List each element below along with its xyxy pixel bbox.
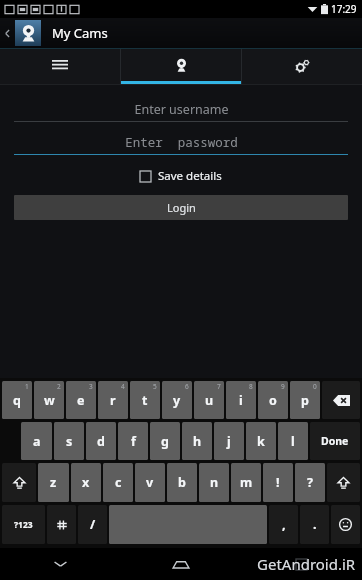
button[interactable]: Done — [310, 422, 360, 460]
button[interactable]: Enter password — [14, 130, 348, 155]
button[interactable]: Recent apps — [241, 548, 362, 580]
staticText: ! — [276, 474, 280, 491]
staticText: GetAndroid.iR — [257, 554, 356, 574]
staticText: k — [257, 433, 265, 450]
button[interactable]: Backspace — [322, 381, 360, 419]
button[interactable]: x — [71, 463, 101, 502]
staticText: 2 — [57, 382, 61, 391]
button[interactable]: r — [98, 381, 128, 419]
staticText: o — [269, 392, 277, 409]
button[interactable]: p — [290, 381, 320, 419]
staticText: q — [13, 392, 21, 409]
staticText: y — [173, 392, 181, 409]
staticText: v — [146, 474, 154, 491]
button[interactable]: / — [78, 505, 107, 544]
button[interactable]: e — [66, 381, 96, 419]
button[interactable]: Settings — [242, 49, 362, 84]
button[interactable]: l — [278, 422, 308, 460]
button[interactable]: List — [0, 49, 120, 84]
button[interactable]: f — [118, 422, 148, 460]
button[interactable]: Shift — [327, 463, 360, 502]
staticText: 9 — [281, 382, 285, 391]
button[interactable]: Home — [120, 548, 241, 580]
button[interactable]: a — [21, 422, 52, 460]
button[interactable]: . — [300, 505, 329, 544]
button[interactable]: w — [34, 381, 64, 419]
staticText: n — [210, 474, 219, 491]
button[interactable]: s — [54, 422, 84, 460]
staticText: a — [33, 433, 41, 450]
button[interactable]: t — [130, 381, 160, 419]
staticText: 1 — [25, 382, 29, 391]
button[interactable]: Cameras — [121, 49, 241, 84]
staticText: u — [205, 392, 214, 409]
button[interactable]: v — [135, 463, 165, 502]
button[interactable]: ! — [263, 463, 293, 502]
staticText: 4 — [121, 382, 125, 391]
staticText: r — [110, 392, 116, 409]
button[interactable]: Shift — [2, 463, 36, 502]
staticText: My Cams — [52, 24, 108, 42]
button[interactable]: g — [150, 422, 180, 460]
button[interactable]: j — [214, 422, 244, 460]
button[interactable]: Back — [0, 18, 362, 48]
staticText: g — [161, 433, 169, 450]
staticText: t — [142, 392, 148, 409]
staticText: p — [301, 392, 309, 409]
button[interactable]: Save details — [140, 168, 222, 184]
staticText: 6 — [185, 382, 189, 391]
button[interactable]: ?123 — [2, 505, 45, 544]
button[interactable]: Back — [0, 548, 120, 580]
button[interactable]: y — [162, 381, 192, 419]
staticText: i — [239, 392, 243, 409]
button[interactable]: Login — [14, 195, 348, 220]
staticText: b — [178, 474, 186, 491]
staticText: x — [82, 474, 90, 491]
button[interactable]: o — [258, 381, 288, 419]
staticText: h — [193, 433, 202, 450]
staticText: z — [50, 474, 57, 491]
button[interactable]: d — [86, 422, 116, 460]
staticText: 5 — [153, 382, 157, 391]
staticText: c — [115, 474, 122, 491]
button[interactable]: Emoji — [331, 505, 360, 544]
staticText: Login — [167, 200, 196, 215]
staticText: . — [313, 516, 317, 533]
staticText: 17:29 — [331, 2, 357, 16]
staticText: 8 — [249, 382, 253, 391]
button[interactable]: z — [38, 463, 69, 502]
staticText: w — [44, 392, 55, 409]
other: Back — [3, 29, 12, 38]
staticText: e — [77, 392, 85, 409]
staticText: f — [131, 433, 136, 450]
button[interactable]: c — [103, 463, 133, 502]
staticText: m — [240, 474, 253, 491]
staticText: ? — [307, 474, 313, 491]
staticText: Enter username — [134, 101, 229, 118]
button[interactable]: ? — [295, 463, 325, 502]
button[interactable]: Enter username — [14, 97, 348, 122]
staticText: Enter password — [125, 134, 238, 151]
button[interactable]: n — [199, 463, 229, 502]
staticText: 0 — [313, 382, 317, 391]
staticText: j — [227, 433, 231, 450]
staticText: Done — [321, 434, 349, 448]
button[interactable]: h — [182, 422, 212, 460]
staticText: / — [90, 516, 96, 533]
staticText: Save details — [158, 168, 222, 184]
staticText: ?123 — [14, 519, 33, 531]
button[interactable]: m — [231, 463, 261, 502]
button[interactable]: k — [246, 422, 276, 460]
button[interactable]: Change language — [47, 505, 76, 544]
button[interactable]: i — [226, 381, 256, 419]
staticText: , — [282, 516, 286, 533]
staticText: 3 — [89, 382, 93, 391]
staticText: 7 — [217, 382, 221, 391]
button[interactable]: b — [167, 463, 197, 502]
staticText: l — [291, 433, 295, 450]
button[interactable]: q — [2, 381, 32, 419]
staticText: s — [66, 433, 73, 450]
button[interactable]: u — [194, 381, 224, 419]
button[interactable]: , — [269, 505, 298, 544]
